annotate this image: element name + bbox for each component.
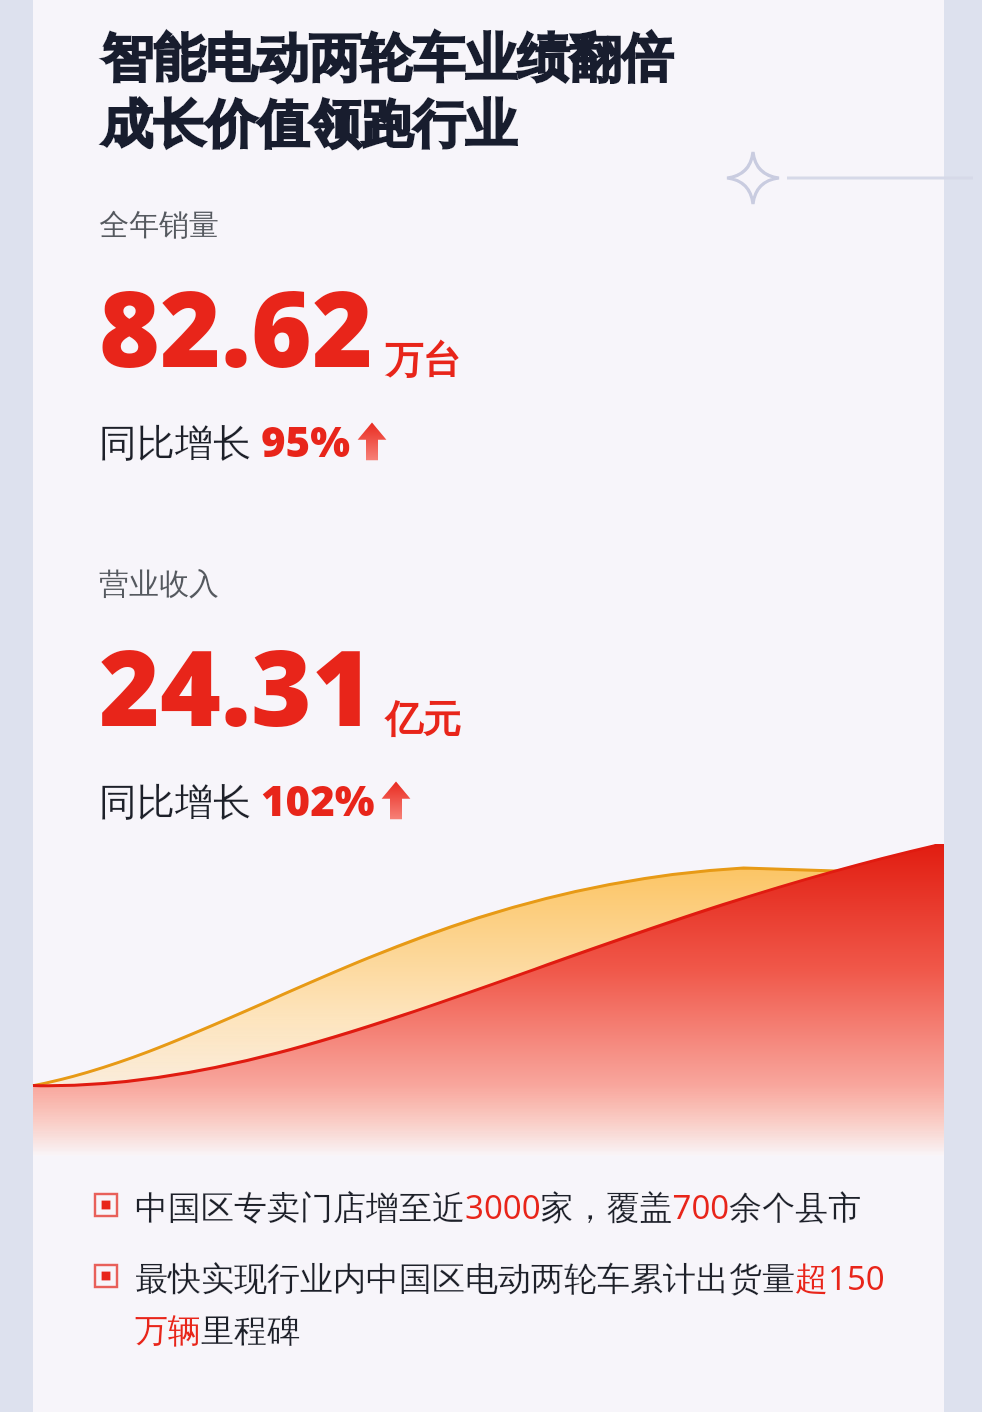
other: Bullet xyxy=(95,1265,117,1287)
staticText: 全年销量 xyxy=(99,206,219,244)
button[interactable]: Bullet xyxy=(33,1255,944,1352)
staticText: 102% xyxy=(261,771,375,828)
staticText: 万台 xyxy=(385,336,461,384)
button[interactable]: Bullet xyxy=(33,1184,944,1229)
staticText: 中国区专卖门店增至近3000家，覆盖700余个县市 xyxy=(135,1184,862,1229)
staticText: 成长价值领跑行业 xyxy=(101,92,517,158)
staticText: 营业收入 xyxy=(99,565,219,603)
staticText: 同比增长 xyxy=(99,774,261,826)
staticText: 82.62 xyxy=(99,256,373,398)
staticText: 95% xyxy=(261,412,351,469)
staticText: 24.31 xyxy=(99,615,373,757)
staticText: 同比增长 xyxy=(99,415,261,467)
staticText: 最快实现行业内中国区电动两轮车累计出货量超150万辆里程碑 xyxy=(135,1255,914,1352)
staticText: 智能电动两轮车业绩翻倍 xyxy=(101,26,673,92)
other: Bullet xyxy=(95,1194,117,1216)
staticText: 亿元 xyxy=(385,695,461,743)
